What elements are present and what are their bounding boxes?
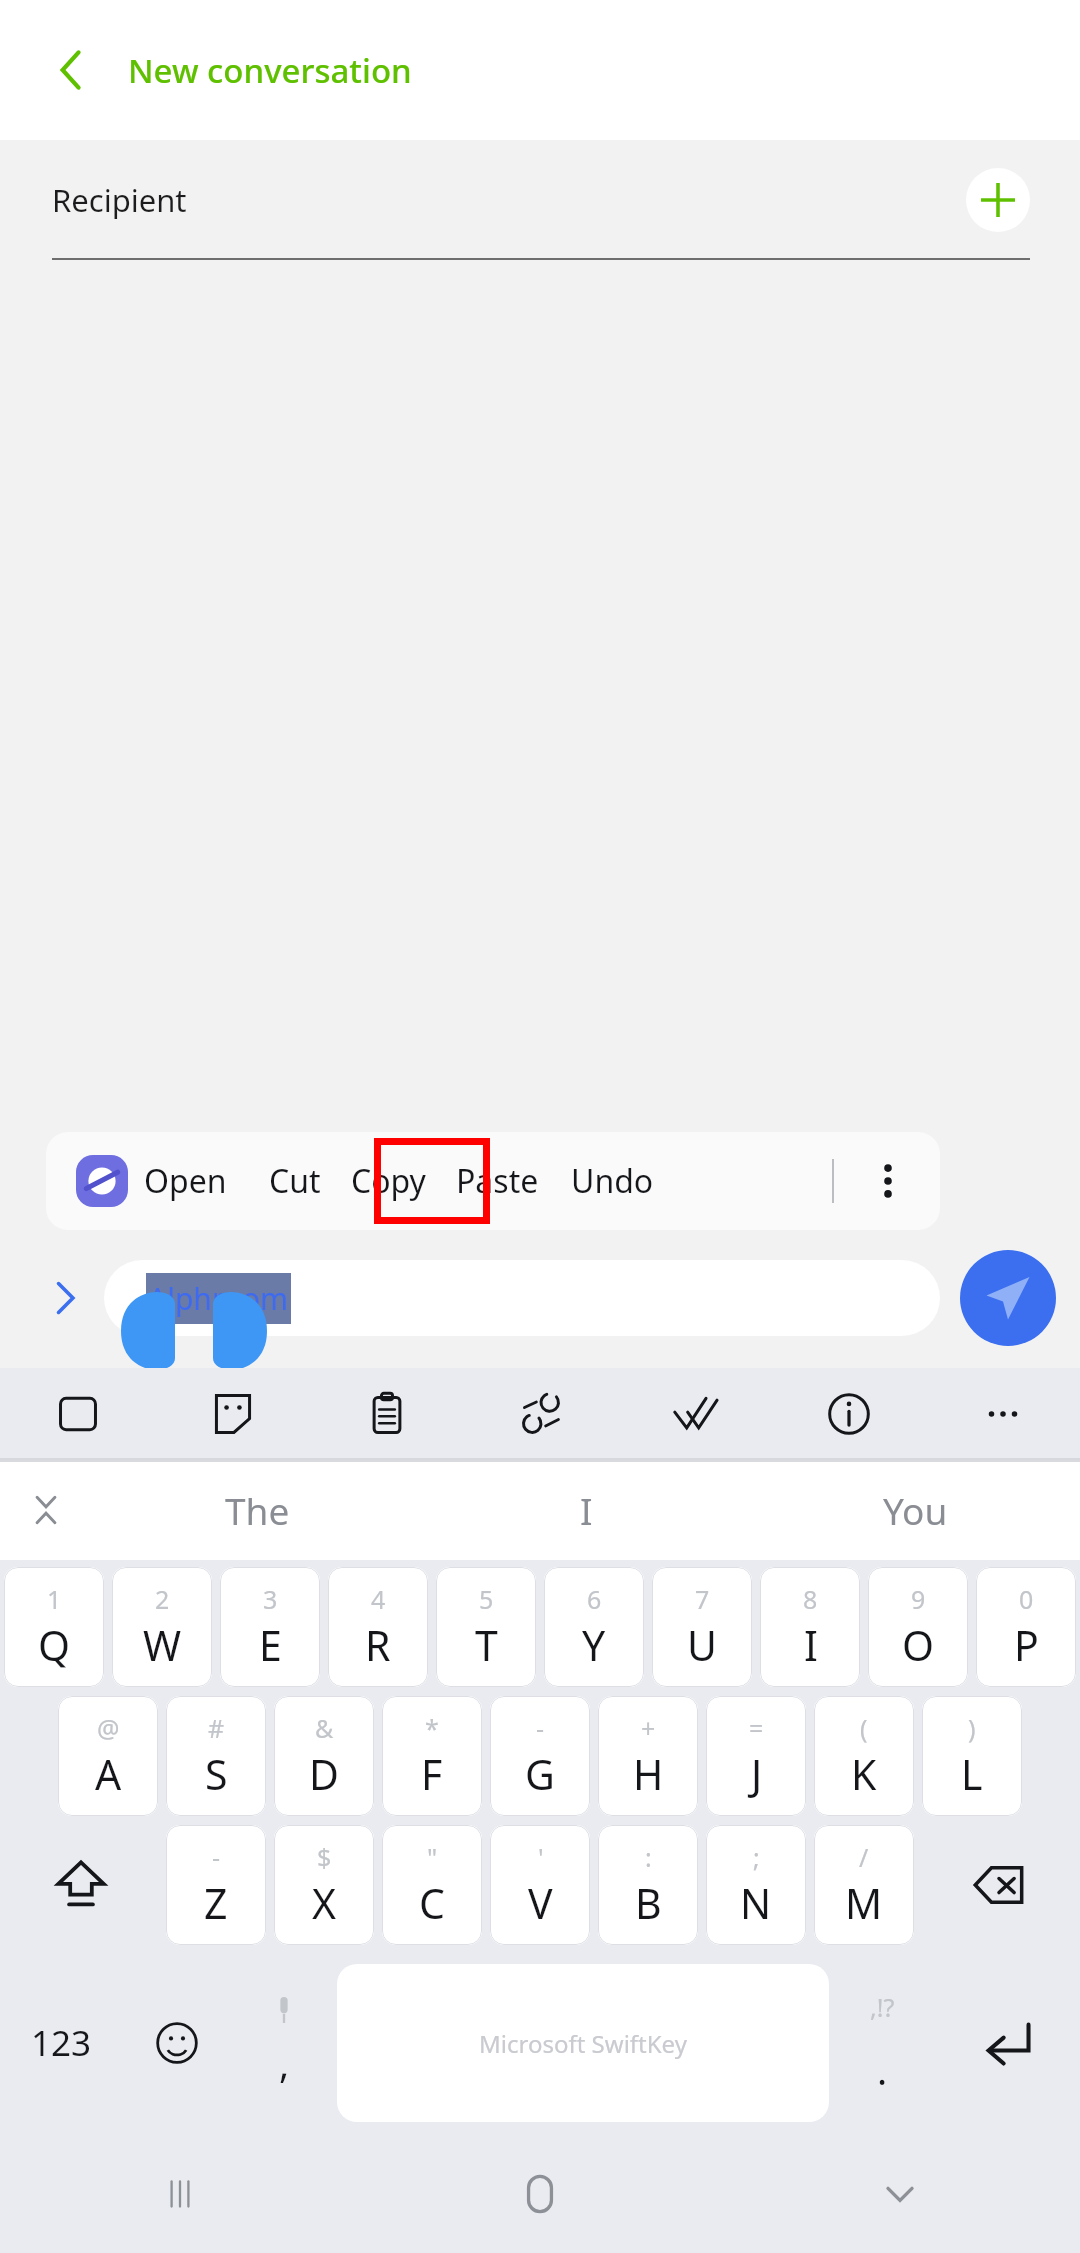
button[interactable]: Info <box>772 1368 926 1460</box>
button[interactable]: Cut <box>269 1132 321 1230</box>
button[interactable]: 2 <box>112 1567 212 1687</box>
staticText: I <box>580 1485 593 1535</box>
button[interactable]: Clipboard <box>310 1368 464 1460</box>
staticText: ' <box>538 1840 544 1874</box>
button[interactable]: GIF <box>0 1368 155 1460</box>
button[interactable]: Send <box>960 1250 1056 1346</box>
staticText: Copy <box>351 1159 426 1203</box>
staticText: Paste <box>456 1159 539 1203</box>
staticText: A <box>95 1746 122 1802</box>
button[interactable]: 1 <box>4 1567 104 1687</box>
staticText: I <box>804 1617 818 1673</box>
button[interactable]: Translate <box>464 1368 618 1460</box>
button[interactable]: / <box>814 1825 914 1945</box>
button[interactable]: @ <box>58 1696 158 1816</box>
button[interactable]: 5 <box>436 1567 536 1687</box>
button[interactable]: " <box>382 1825 482 1945</box>
button[interactable]: - <box>490 1696 590 1816</box>
button[interactable]: * <box>382 1696 482 1816</box>
staticText: L <box>961 1746 983 1802</box>
button[interactable]: 6 <box>544 1567 644 1687</box>
button[interactable]: ( <box>814 1696 914 1816</box>
staticText: * <box>425 1711 439 1745</box>
staticText: ; <box>753 1840 760 1874</box>
staticText: M <box>845 1875 883 1931</box>
staticText: . <box>877 2044 888 2096</box>
button[interactable]: Copy <box>351 1132 426 1230</box>
button[interactable]: Open in browser <box>76 1155 128 1207</box>
button[interactable]: Expand toolbar <box>36 1269 94 1327</box>
button[interactable]: 3 <box>220 1567 320 1687</box>
staticText: D <box>309 1746 339 1802</box>
staticText: R <box>365 1617 391 1673</box>
button[interactable]: + <box>598 1696 698 1816</box>
button[interactable]: : <box>598 1825 698 1945</box>
staticText: Open <box>144 1159 227 1203</box>
button[interactable]: 4 <box>328 1567 428 1687</box>
button[interactable]: 0 <box>976 1567 1076 1687</box>
button[interactable]: More options <box>860 1153 916 1209</box>
button[interactable]: Back <box>34 33 108 107</box>
button[interactable]: & <box>274 1696 374 1816</box>
button[interactable]: Open <box>144 1132 227 1230</box>
button[interactable]: ,!? <box>829 1951 936 2135</box>
staticText: X <box>312 1875 337 1931</box>
button[interactable]: You <box>751 1460 1080 1560</box>
button[interactable]: Shift <box>0 1823 162 1947</box>
staticText: New conversation <box>128 48 412 93</box>
button[interactable]: = <box>706 1696 806 1816</box>
staticText: Cut <box>269 1159 321 1203</box>
button[interactable]: Emoji <box>123 1951 230 2135</box>
staticText: Q <box>38 1617 71 1673</box>
staticText: - <box>212 1840 221 1874</box>
button[interactable]: Voice input <box>230 1951 337 2135</box>
button[interactable]: Handwriting <box>618 1368 772 1460</box>
staticText: Alphr.com <box>148 1278 289 1319</box>
button[interactable]: $ <box>274 1825 374 1945</box>
staticText: + <box>641 1711 656 1745</box>
button[interactable]: 9 <box>868 1567 968 1687</box>
button[interactable]: 7 <box>652 1567 752 1687</box>
button[interactable]: Home <box>360 2135 720 2253</box>
button[interactable]: Recents <box>0 2135 360 2253</box>
button[interactable]: Hide keyboard <box>720 2135 1080 2253</box>
staticText: " <box>427 1840 438 1874</box>
staticText: - <box>536 1711 545 1745</box>
button[interactable]: ; <box>706 1825 806 1945</box>
button[interactable]: Enter <box>936 1951 1080 2135</box>
staticText: @ <box>97 1711 120 1745</box>
button[interactable]: Alphr.com <box>104 1260 940 1336</box>
staticText: $ <box>317 1840 332 1874</box>
staticText: , <box>279 2037 290 2089</box>
button[interactable]: ) <box>922 1696 1022 1816</box>
staticText: K <box>851 1746 877 1802</box>
button[interactable]: Add recipient <box>966 168 1030 232</box>
staticText: ) <box>968 1711 976 1745</box>
staticText: Y <box>582 1617 606 1673</box>
button[interactable]: The <box>92 1460 422 1560</box>
button[interactable]: 8 <box>760 1567 860 1687</box>
button[interactable]: - <box>166 1825 266 1945</box>
button[interactable]: # <box>166 1696 266 1816</box>
button[interactable]: More <box>926 1368 1080 1460</box>
button[interactable]: Backspace <box>918 1823 1080 1947</box>
button[interactable]: Stickers <box>155 1368 310 1460</box>
button[interactable]: 123 <box>0 1951 123 2135</box>
button[interactable]: Undo <box>571 1132 654 1230</box>
button[interactable]: I <box>422 1460 751 1560</box>
button[interactable]: Space <box>337 1964 829 2122</box>
staticText: 1 <box>47 1582 62 1616</box>
staticText: 123 <box>31 2019 92 2067</box>
staticText: C <box>419 1875 445 1931</box>
button[interactable]: Collapse suggestions <box>0 1460 92 1560</box>
button[interactable]: ' <box>490 1825 590 1945</box>
staticText: V <box>528 1875 553 1931</box>
staticText: 5 <box>479 1582 494 1616</box>
staticText: E <box>259 1617 282 1673</box>
staticText: 7 <box>695 1582 710 1616</box>
staticText: G <box>525 1746 555 1802</box>
staticText: The <box>225 1485 290 1535</box>
staticText: B <box>635 1875 662 1931</box>
staticText: = <box>749 1711 764 1745</box>
button[interactable]: Paste <box>456 1132 539 1230</box>
